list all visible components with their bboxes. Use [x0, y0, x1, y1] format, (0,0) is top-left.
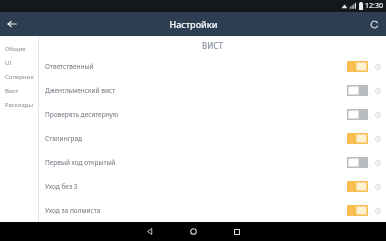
staticText: Проверять десятерную: [45, 110, 347, 119]
button[interactable]: Info: [372, 133, 383, 144]
staticText: Соперник: [5, 73, 34, 81]
button[interactable]: Toggle off: [347, 109, 368, 120]
button[interactable]: Сталинград: [39, 126, 386, 150]
button[interactable]: Toggle on: [347, 133, 368, 144]
staticText: ВИСТ: [202, 40, 223, 51]
button[interactable]: Info: [372, 61, 383, 72]
button[interactable]: Уход за полмиста: [39, 198, 386, 222]
button[interactable]: Back: [0, 12, 24, 36]
button[interactable]: UI: [0, 56, 38, 70]
button[interactable]: Toggle on: [347, 181, 368, 192]
staticText: Ответственный: [45, 62, 347, 71]
button[interactable]: Info: [372, 85, 383, 96]
staticText: Джентльменский вист: [45, 86, 347, 95]
button[interactable]: Back: [127, 222, 171, 241]
button[interactable]: Home: [171, 222, 215, 241]
button[interactable]: Вист: [0, 84, 38, 98]
button[interactable]: Соперник: [0, 70, 38, 84]
button[interactable]: Recent apps: [215, 222, 259, 241]
button[interactable]: Info: [372, 157, 383, 168]
button[interactable]: Общие: [0, 42, 38, 56]
button[interactable]: Проверять десятерную: [39, 102, 386, 126]
staticText: Уход без 3: [45, 182, 347, 191]
button[interactable]: Info: [372, 181, 383, 192]
button[interactable]: Джентльменский вист: [39, 78, 386, 102]
button[interactable]: Toggle off: [347, 85, 368, 96]
staticText: Первый ход открытый: [45, 158, 347, 167]
button[interactable]: Ответственный: [39, 54, 386, 78]
button[interactable]: Toggle off: [347, 157, 368, 168]
staticText: Расклады: [5, 101, 34, 109]
button[interactable]: Расклады: [0, 98, 38, 112]
staticText: Настройки: [169, 18, 218, 30]
button[interactable]: Уход без 3: [39, 174, 386, 198]
staticText: Общие: [5, 45, 26, 53]
staticText: Сталинград: [45, 134, 347, 143]
staticText: Вист: [5, 87, 19, 95]
button[interactable]: Info: [372, 109, 383, 120]
staticText: UI: [5, 59, 12, 67]
button[interactable]: Refresh: [362, 12, 386, 36]
button[interactable]: Info: [372, 205, 383, 216]
staticText: Уход за полмиста: [45, 206, 347, 215]
button[interactable]: Первый ход открытый: [39, 150, 386, 174]
button[interactable]: Toggle on: [347, 61, 368, 72]
button[interactable]: Toggle on: [347, 205, 368, 216]
staticText: 12:30: [365, 1, 383, 11]
